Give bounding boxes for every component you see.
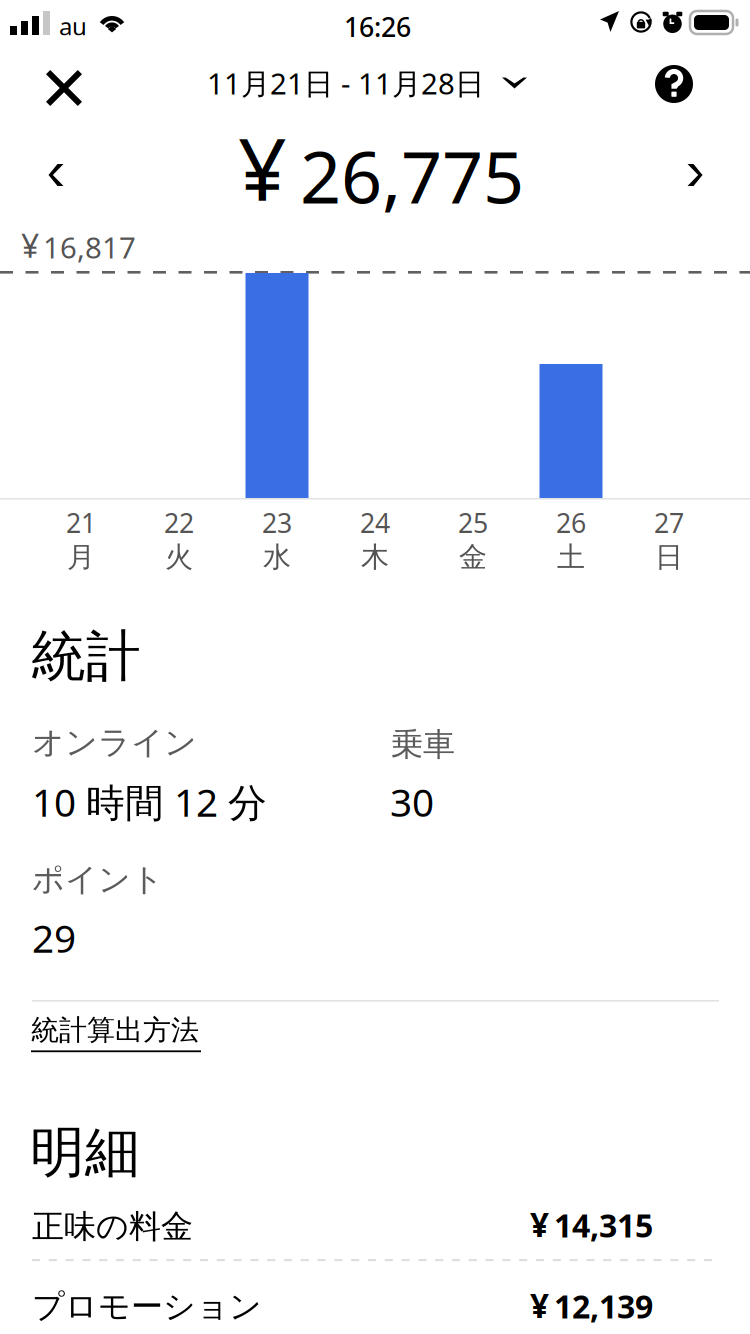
staticText: ¥ (530, 1202, 549, 1246)
staticText: 水 (263, 540, 291, 574)
staticText: 統計算出方法 (31, 1013, 199, 1047)
button[interactable]: Help (0, 0, 716, 117)
staticText: 23 (262, 505, 292, 540)
button[interactable]: Next week (0, 0, 745, 215)
staticText: 木 (361, 540, 389, 574)
staticText: 25 (458, 505, 488, 540)
staticText: 火 (165, 540, 193, 574)
staticText: ¥ (238, 111, 287, 224)
staticText: 10 時間 12 分 (32, 776, 267, 827)
staticText: 21 (66, 505, 96, 540)
staticText: オンライン (32, 723, 197, 762)
staticText: プロモーション (32, 1287, 262, 1326)
staticText: 16:26 (344, 9, 411, 44)
staticText: 29 (32, 912, 76, 963)
staticText: 30 (390, 776, 434, 827)
staticText: 14,315 (554, 1204, 653, 1246)
staticText: ¥ (21, 224, 39, 266)
button[interactable]: Previous week (0, 0, 106, 215)
staticText: 26 (556, 505, 586, 540)
staticText: 11月21日 - 11月28日 (207, 63, 484, 102)
staticText: ポイント (32, 860, 164, 899)
staticText: au (59, 10, 87, 42)
staticText: 土 (557, 540, 585, 574)
staticText: 統計 (31, 623, 141, 690)
button[interactable]: 統計算出方法 (0, 0, 201, 1052)
staticText: 24 (360, 505, 390, 540)
staticText: 月 (67, 540, 95, 574)
button[interactable]: 11月21日 - 11月28日 (0, 0, 527, 113)
staticText: 正味の料金 (32, 1207, 193, 1246)
staticText: 12,139 (554, 1285, 653, 1327)
staticText: ¥ (530, 1283, 549, 1327)
staticText: 16,817 (43, 227, 136, 266)
staticText: 26,775 (300, 128, 524, 223)
staticText: 明細 (30, 1119, 140, 1186)
staticText: 27 (654, 505, 684, 540)
button[interactable]: Close (0, 0, 110, 121)
staticText: 日 (655, 540, 683, 574)
staticText: 22 (164, 505, 194, 540)
staticText: 乗車 (391, 725, 455, 764)
staticText: 金 (459, 540, 487, 574)
